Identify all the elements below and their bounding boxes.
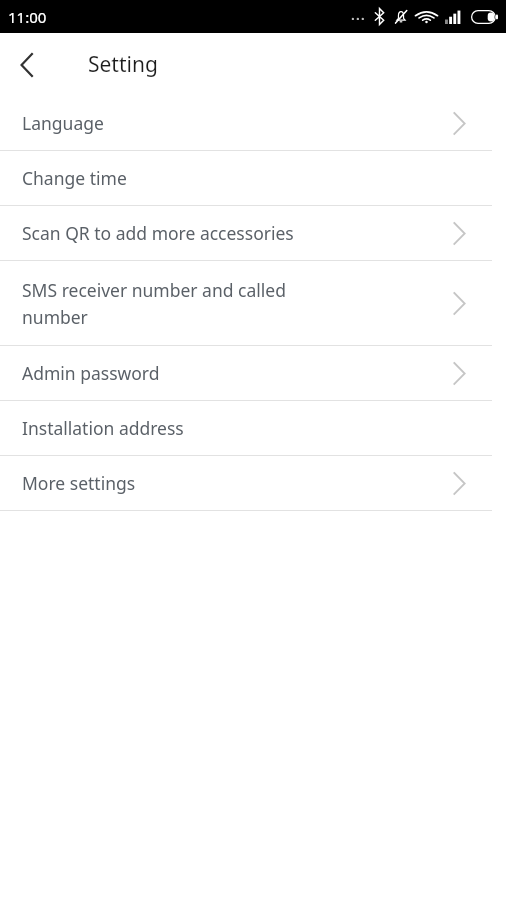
staticText: Installation address [22, 416, 184, 440]
button[interactable]: Language [0, 96, 506, 150]
staticText: Setting [88, 50, 158, 79]
staticText: More settings [22, 471, 136, 495]
button[interactable]: Scan QR to add more accessories [0, 206, 506, 260]
staticText: Scan QR to add more accessories [22, 221, 294, 245]
staticText: Language [22, 111, 104, 135]
button[interactable]: Admin password [0, 346, 506, 400]
button[interactable]: Back [0, 39, 52, 91]
staticText: 11:00 [8, 7, 47, 27]
button[interactable]: Change time [0, 151, 506, 205]
button[interactable]: Installation address [0, 401, 506, 455]
button[interactable]: SMS receiver number and called number [0, 261, 506, 345]
button[interactable]: More settings [0, 456, 506, 510]
staticText: Change time [22, 166, 127, 190]
staticText: Admin password [22, 361, 160, 385]
staticText: SMS receiver number and called number [22, 278, 286, 329]
